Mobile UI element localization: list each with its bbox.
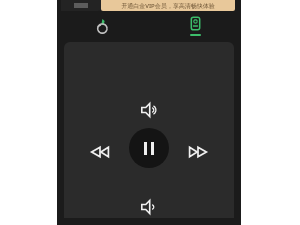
button[interactable]: Rewind (80, 132, 120, 172)
button[interactable]: Volume up (129, 90, 169, 130)
button[interactable]: Volume down (129, 187, 169, 218)
button[interactable]: Fast forward (178, 132, 218, 172)
button[interactable] (61, 0, 101, 11)
button[interactable]: 开通白金VIP会员，享高清畅快体验 (101, 0, 235, 11)
staticText: 开通白金VIP会员，享高清畅快体验 (121, 2, 215, 10)
button[interactable]: Remote (149, 11, 241, 40)
button[interactable]: Pause (129, 128, 169, 168)
button[interactable]: Touchpad (57, 11, 149, 40)
